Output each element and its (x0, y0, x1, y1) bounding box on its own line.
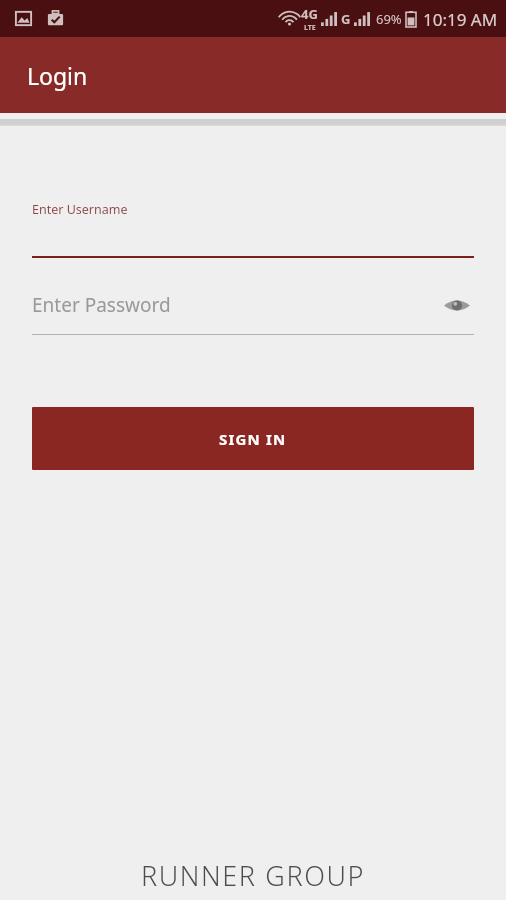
staticText: 4G (301, 5, 318, 23)
button[interactable]: Show password (440, 288, 474, 322)
staticText: SIGN IN (219, 429, 287, 449)
staticText: Login (27, 60, 88, 91)
staticText: G (341, 10, 351, 28)
staticText: LTE (304, 23, 316, 33)
staticText: RUNNER GROUP (32, 857, 474, 894)
button[interactable]: Enter Username (32, 201, 474, 258)
staticText: Enter Username (32, 201, 128, 218)
button[interactable]: SIGN IN (32, 407, 474, 470)
staticText: 69% (376, 10, 402, 28)
button[interactable]: Enter Password (32, 288, 474, 335)
staticText: 10:19 AM (423, 8, 498, 31)
staticText: Enter Password (32, 292, 440, 318)
